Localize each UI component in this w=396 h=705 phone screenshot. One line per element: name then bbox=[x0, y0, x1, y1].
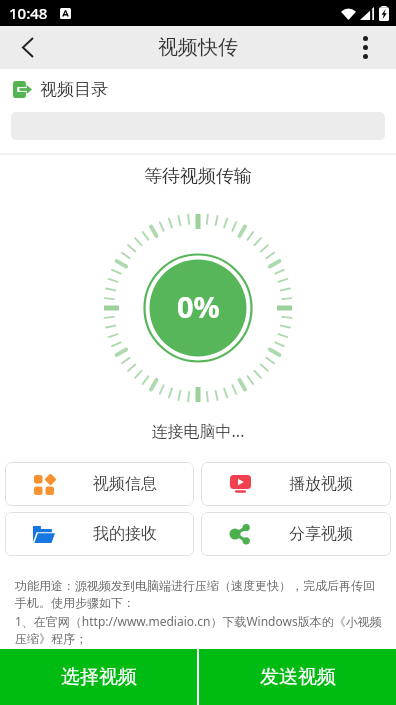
staticText: 等待视频传输 bbox=[0, 165, 396, 188]
button[interactable]: 视频信息 bbox=[5, 462, 194, 506]
staticText: 1、在官网（http://www.mediaio.cn）下载Windows版本的… bbox=[15, 613, 385, 647]
button[interactable]: 视频目录 bbox=[13, 79, 396, 100]
button[interactable]: 发送视频 bbox=[199, 649, 396, 705]
staticText: 功能用途：源视频发到电脑端进行压缩（速度更快），完成后再传回手机。使用步骤如下： bbox=[15, 578, 385, 611]
staticText: 播放视频 bbox=[289, 474, 353, 494]
button[interactable]: More options bbox=[334, 26, 396, 69]
staticText: 发送视频 bbox=[260, 665, 336, 689]
staticText: 视频快传 bbox=[158, 35, 238, 60]
staticText: 我的接收 bbox=[93, 524, 157, 544]
staticText: 分享视频 bbox=[289, 524, 353, 544]
button[interactable]: 播放视频 bbox=[201, 462, 391, 506]
button[interactable]: Back bbox=[0, 26, 54, 69]
staticText: 0% bbox=[177, 287, 220, 326]
staticText: 视频目录 bbox=[40, 79, 108, 100]
button[interactable]: 选择视频 bbox=[0, 649, 197, 705]
staticText: 选择视频 bbox=[61, 665, 137, 689]
staticText: 10:48 bbox=[9, 3, 48, 23]
button[interactable]: 我的接收 bbox=[5, 512, 194, 556]
button[interactable]: 分享视频 bbox=[201, 512, 391, 556]
staticText: 视频信息 bbox=[93, 474, 157, 494]
staticText: 连接电脑中... bbox=[0, 420, 396, 442]
